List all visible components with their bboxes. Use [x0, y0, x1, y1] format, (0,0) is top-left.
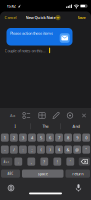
- button[interactable]: -: [1, 145, 9, 154]
- staticText: 6: [49, 135, 51, 140]
- staticText: $: [58, 147, 60, 152]
- button[interactable]: @: [73, 145, 81, 154]
- button[interactable]: 3: [19, 133, 27, 142]
- staticText: ;: [31, 147, 32, 152]
- button[interactable]: Delete: [79, 157, 90, 166]
- button[interactable]: I: [1, 122, 29, 131]
- staticText: return: [72, 171, 83, 176]
- staticText: Please action these items: [10, 31, 53, 36]
- button[interactable]: 8: [64, 133, 72, 142]
- staticText: I: [14, 124, 15, 129]
- button[interactable]: &: [64, 145, 72, 154]
- staticText: !: [57, 159, 58, 164]
- button[interactable]: The: [31, 122, 59, 131]
- button[interactable]: 6: [46, 133, 54, 142]
- button[interactable]: .: [14, 157, 22, 166]
- staticText: @: [75, 147, 79, 152]
- button[interactable]: Save: [75, 13, 88, 21]
- button[interactable]: ": [82, 145, 90, 154]
- button[interactable]: ?: [40, 157, 48, 166]
- button[interactable]: Please action these items: [6, 28, 72, 45]
- staticText: 4: [31, 135, 33, 140]
- staticText: 2: [13, 135, 15, 140]
- staticText: :: [22, 147, 23, 152]
- staticText: ': [70, 159, 71, 164]
- button[interactable]: :: [19, 145, 27, 154]
- button[interactable]: Checklist: [23, 112, 30, 119]
- staticText: Aa: [10, 113, 15, 118]
- button[interactable]: 2: [10, 133, 18, 142]
- button[interactable]: 1: [1, 133, 9, 142]
- button[interactable]: ABC: [1, 169, 20, 178]
- staticText: New Quick Note: [25, 15, 55, 20]
- staticText: .: [18, 159, 19, 164]
- staticText: 7: [58, 135, 60, 140]
- button[interactable]: 0: [82, 133, 90, 142]
- staticText: ?: [43, 159, 45, 164]
- button[interactable]: space: [22, 169, 63, 178]
- button[interactable]: Formatting: [7, 111, 17, 120]
- button[interactable]: Dismiss toolbar: [82, 113, 86, 118]
- button[interactable]: !: [53, 157, 61, 166]
- button[interactable]: Attachments: [67, 112, 73, 119]
- button[interactable]: (: [37, 145, 45, 154]
- staticText: 0: [85, 135, 87, 140]
- staticText: -: [4, 147, 5, 152]
- button[interactable]: ,: [27, 157, 35, 166]
- staticText: ABC: [7, 172, 13, 175]
- staticText: 5: [40, 135, 42, 140]
- button[interactable]: Table: [38, 112, 45, 119]
- button[interactable]: 5: [37, 133, 45, 142]
- button[interactable]: 7: [55, 133, 63, 142]
- button[interactable]: return: [65, 169, 90, 178]
- button[interactable]: Next keyboard: [8, 185, 14, 191]
- button[interactable]: And: [62, 122, 90, 131]
- staticText: 1: [4, 135, 6, 140]
- button[interactable]: ;: [28, 145, 36, 154]
- staticText: Couple of notes on this…: [4, 48, 45, 53]
- staticText: 3: [22, 135, 24, 140]
- button[interactable]: Cancel: [2, 13, 18, 21]
- staticText: The: [42, 124, 48, 129]
- staticText: /: [13, 147, 14, 152]
- button[interactable]: Note options: [55, 15, 61, 20]
- staticText: 15:42: [6, 3, 15, 9]
- button[interactable]: $: [55, 145, 63, 154]
- staticText: ,: [31, 159, 32, 164]
- button[interactable]: Markup: [52, 112, 60, 119]
- staticText: 9: [76, 135, 78, 140]
- button[interactable]: ': [66, 157, 74, 166]
- staticText: Save: [77, 15, 85, 20]
- staticText: #+=: [4, 160, 10, 163]
- staticText: Cancel: [4, 15, 16, 20]
- button[interactable]: 9: [73, 133, 81, 142]
- button[interactable]: Dictation: [75, 184, 82, 192]
- staticText: space: [38, 171, 48, 176]
- staticText: &: [67, 147, 70, 152]
- staticText: (: [40, 147, 41, 152]
- button[interactable]: ): [46, 145, 54, 154]
- staticText: And: [72, 124, 79, 129]
- button[interactable]: 4: [28, 133, 36, 142]
- button[interactable]: #+=: [1, 157, 12, 166]
- staticText: 8: [67, 135, 69, 140]
- staticText: ": [85, 147, 87, 152]
- button[interactable]: /: [10, 145, 18, 154]
